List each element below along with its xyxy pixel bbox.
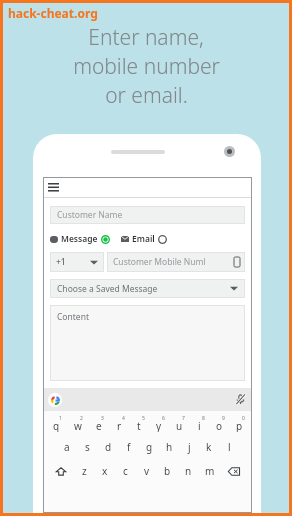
button[interactable]: n [178,463,199,479]
staticText: mobile number [73,52,220,81]
button[interactable]: Choose a Saved Message [50,279,245,298]
button[interactable]: s [77,439,98,455]
button[interactable]: k [199,439,219,455]
button[interactable]: o [209,415,229,432]
button[interactable]: q [46,415,67,432]
staticText: or email. [105,81,188,110]
staticText: n [185,464,192,478]
staticText: w [74,419,82,432]
button[interactable]: Shift [47,463,74,479]
button[interactable]: j [179,439,199,455]
button[interactable]: p [229,415,249,432]
button[interactable]: z [74,463,94,479]
button[interactable]: +1 [50,252,104,272]
staticText: f [127,440,131,454]
staticText: q [53,419,60,432]
staticText: m [205,464,215,478]
staticText: z [82,464,87,478]
staticText: i [198,419,201,432]
staticText: 0 [242,415,245,422]
button[interactable]: w [67,415,88,432]
staticText: j [188,440,191,454]
staticText: 2 [80,415,83,422]
button[interactable]: l [219,439,239,455]
staticText: x [102,464,108,478]
staticText: r [117,419,122,432]
button[interactable]: Voice input disabled [235,394,246,405]
staticText: e [96,419,102,432]
button[interactable]: h [159,439,179,455]
staticText: 8 [202,415,205,422]
button[interactable]: u [169,415,189,432]
button[interactable]: a [56,439,77,455]
staticText: Content [57,311,89,323]
button[interactable]: t [129,415,149,432]
staticText: Message [61,233,98,245]
button[interactable]: Customer Mobile Numl [107,252,245,272]
button[interactable]: e [88,415,109,432]
staticText: hack-cheat.org [8,5,98,21]
button[interactable]: r [109,415,129,432]
staticText: Enter name, [88,23,204,52]
button[interactable]: f [119,439,139,455]
staticText: c [123,464,128,478]
staticText: Email [132,233,155,245]
staticText: u [176,419,183,432]
staticText: v [144,464,150,478]
button[interactable]: Customer Name [50,206,245,224]
staticText: 4 [122,415,125,422]
staticText: d [105,440,112,454]
button[interactable]: Menu [43,177,252,198]
button[interactable]: m [199,463,220,479]
button[interactable]: g [139,439,159,455]
staticText: 7 [182,415,185,422]
button[interactable]: c [115,463,136,479]
button[interactable]: y [149,415,169,432]
staticText: Choose a Saved Message [57,283,158,295]
button[interactable]: d [98,439,119,455]
staticText: p [236,419,243,432]
staticText: h [166,440,173,454]
staticText: 6 [162,415,165,422]
staticText: a [64,440,70,454]
staticText: Customer Name [57,209,123,221]
button[interactable]: Message [50,233,110,245]
staticText: 1 [59,415,62,422]
staticText: b [164,464,171,478]
button[interactable]: x [94,463,115,479]
button[interactable]: i [189,415,209,432]
staticText: t [137,419,141,432]
staticText: g [146,440,153,454]
staticText: Customer Mobile Numl [113,256,206,268]
staticText: k [206,440,212,454]
button[interactable]: Content [50,305,245,381]
staticText: l [228,440,231,454]
button[interactable]: Backspace [220,463,248,479]
staticText: +1 [56,256,66,268]
button[interactable]: Email [121,233,167,245]
button[interactable]: Google [48,393,62,407]
staticText: y [156,419,162,432]
staticText: 3 [101,415,104,422]
button[interactable]: b [157,463,178,479]
staticText: o [216,419,223,432]
staticText: s [85,440,90,454]
staticText: 5 [142,415,145,422]
button[interactable]: v [136,463,157,479]
staticText: 9 [222,415,225,422]
